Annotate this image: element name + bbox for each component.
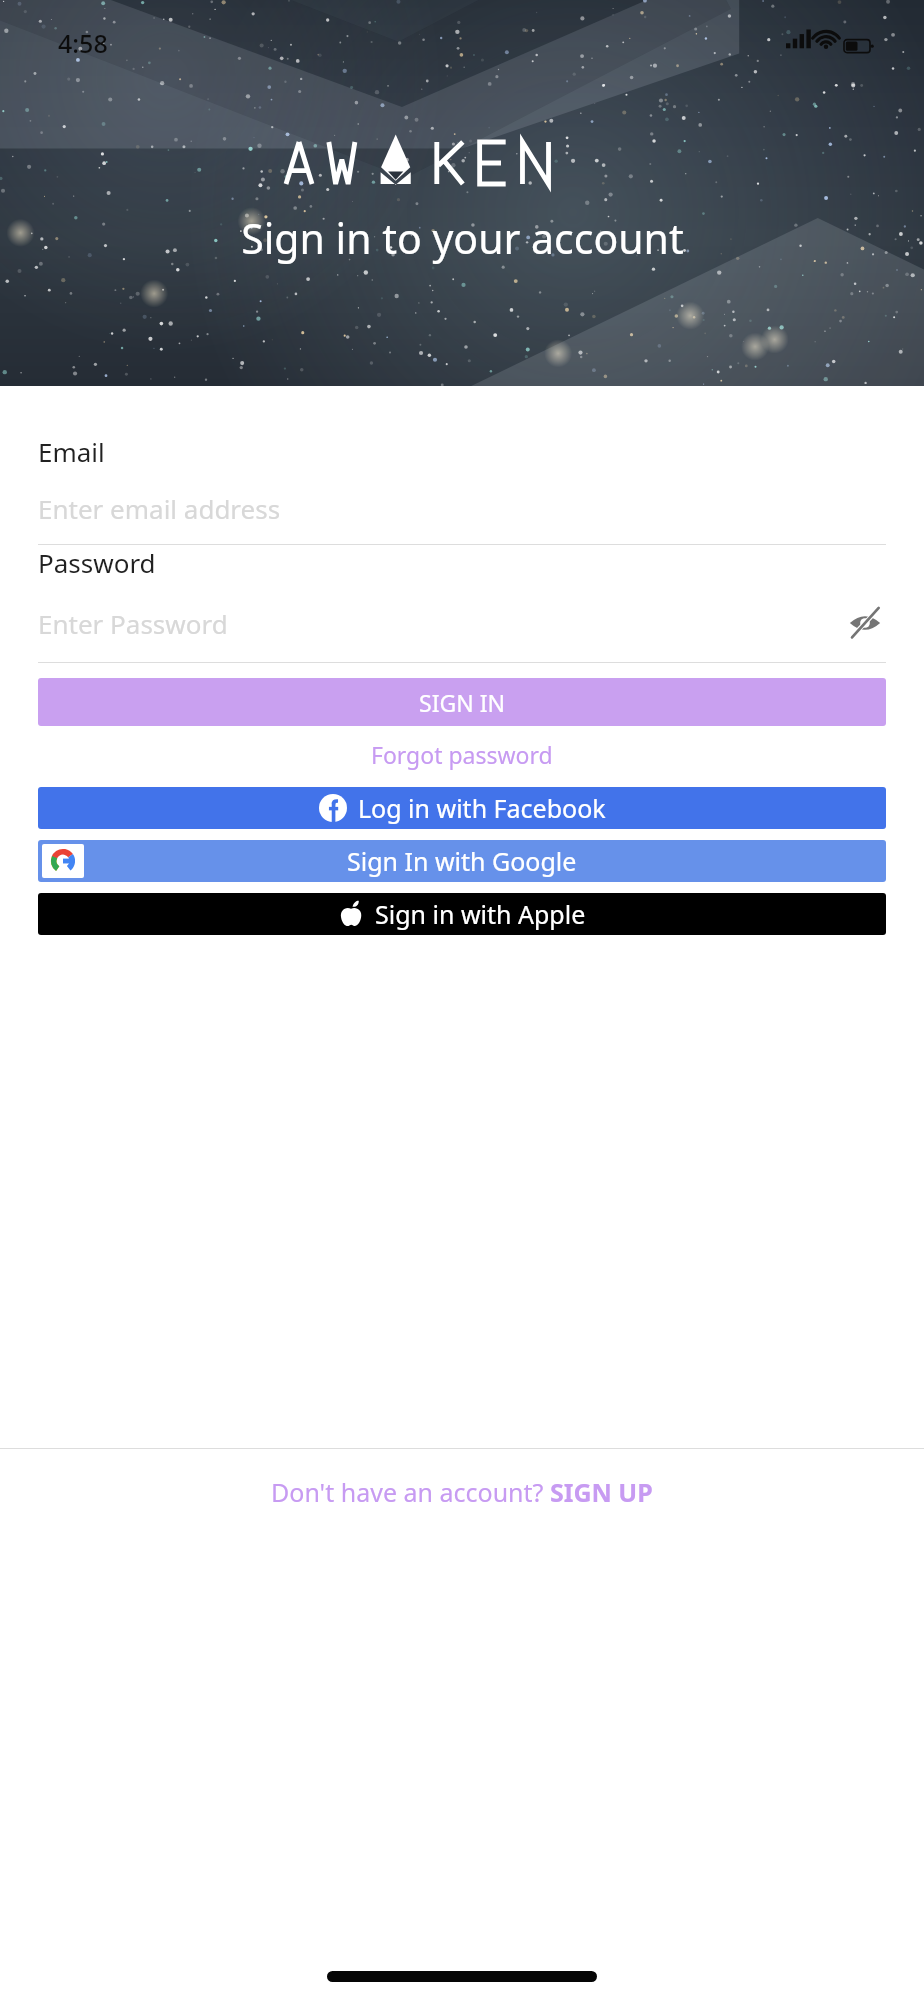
staticText: Email (38, 434, 105, 469)
button[interactable]: Log in with Facebook (38, 787, 886, 829)
button[interactable]: Sign in with Apple (38, 893, 886, 935)
button[interactable]: Enter email address (38, 491, 886, 526)
button[interactable]: Forgot password (0, 726, 924, 783)
button[interactable]: Don't have an account? SIGN UP (0, 1449, 924, 1509)
staticText: Password (38, 545, 156, 580)
button[interactable]: Show password (844, 602, 886, 644)
staticText: Log in with Facebook (358, 791, 606, 825)
staticText: Enter email address (38, 491, 281, 526)
staticText: Don't have an account? SIGN UP (271, 1475, 653, 1509)
staticText: 4:58 (58, 26, 108, 60)
staticText: Forgot password (371, 739, 553, 770)
staticText: Enter Password (38, 606, 228, 641)
button[interactable]: Sign In with Google (38, 840, 886, 882)
staticText: SIGN IN (419, 687, 505, 718)
button[interactable]: Enter Password (38, 606, 844, 641)
staticText: Sign In with Google (347, 844, 577, 878)
staticText: Sign in with Apple (375, 897, 586, 931)
staticText: Sign in to your account (241, 210, 684, 266)
button[interactable]: SIGN IN (38, 678, 886, 726)
